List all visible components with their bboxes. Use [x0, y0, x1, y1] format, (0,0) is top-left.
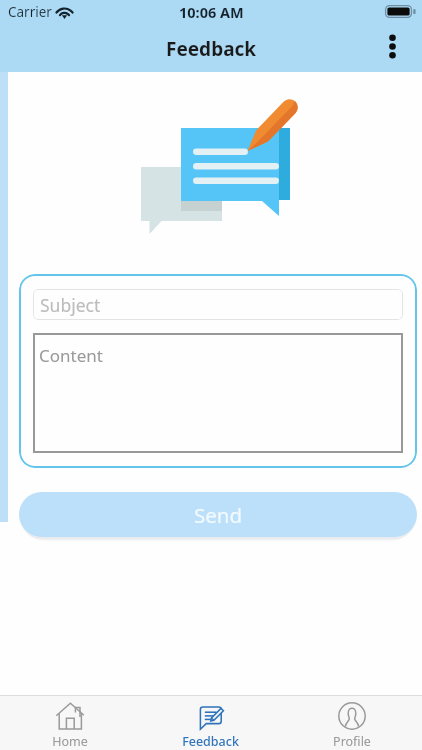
button[interactable]: Profile — [281, 696, 422, 750]
button[interactable]: Content — [33, 333, 403, 453]
staticText: Home — [52, 733, 88, 750]
button[interactable]: Subject — [33, 289, 403, 320]
staticText: 10:06 AM — [179, 2, 244, 22]
button[interactable]: Home — [0, 696, 140, 750]
staticText: Content — [39, 344, 103, 367]
button[interactable]: Feedback — [140, 696, 281, 750]
staticText: Send — [194, 501, 243, 529]
staticText: Feedback — [182, 733, 239, 750]
staticText: Carrier — [8, 3, 52, 21]
button[interactable]: More options — [374, 26, 410, 72]
button[interactable]: Send — [19, 492, 417, 537]
staticText: Subject — [40, 293, 101, 317]
staticText: Feedback — [166, 36, 257, 62]
staticText: Profile — [333, 733, 371, 750]
